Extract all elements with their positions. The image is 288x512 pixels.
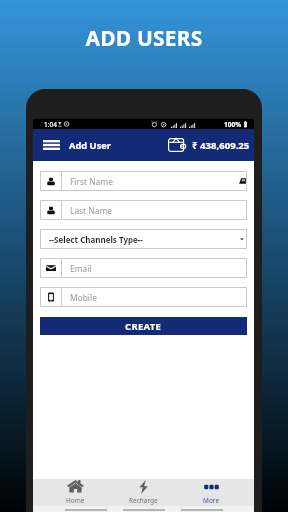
button[interactable]: Wallet balance <box>168 138 250 152</box>
staticText: ₹ 438,609.25 <box>192 139 250 152</box>
staticText: CREATE <box>125 320 162 333</box>
staticText: First Name <box>70 176 113 187</box>
button[interactable]: Home <box>42 479 109 506</box>
staticText: ADD USERS <box>0 24 288 53</box>
button[interactable]: Recharge <box>109 479 177 506</box>
staticText: Add User <box>69 139 112 152</box>
staticText: Mobile <box>70 292 97 303</box>
staticText: Last Name <box>70 205 112 216</box>
button[interactable]: CREATE <box>40 317 247 335</box>
staticText: --Select Channels Type-- <box>49 234 143 245</box>
button[interactable]: Last Name <box>40 200 247 220</box>
staticText: Home <box>66 496 85 505</box>
staticText: 1:04 <box>44 120 57 129</box>
button[interactable]: Mobile <box>40 287 247 307</box>
staticText: Recharge <box>129 496 158 505</box>
button[interactable]: More <box>177 479 245 506</box>
staticText: Email <box>70 263 92 274</box>
staticText: 100% <box>224 120 242 129</box>
button[interactable]: Open navigation menu <box>40 134 62 156</box>
staticText: More <box>203 496 220 505</box>
button[interactable]: First Name <box>40 171 247 191</box>
button[interactable]: --Select Channels Type-- <box>40 229 247 249</box>
button[interactable]: Email <box>40 258 247 278</box>
